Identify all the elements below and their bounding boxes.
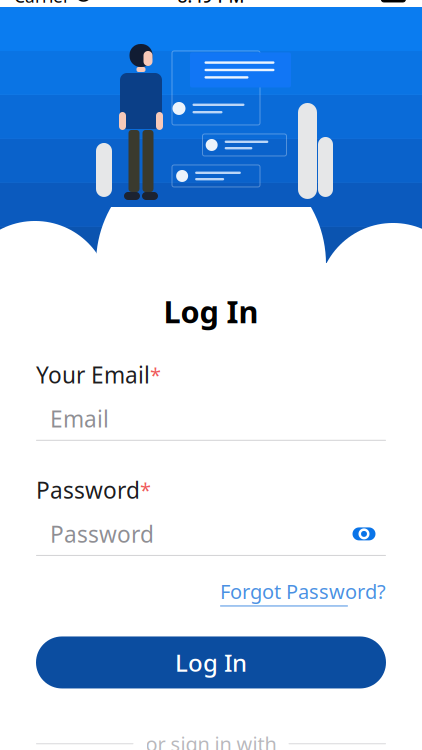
staticText: Email	[50, 404, 109, 434]
button[interactable]: Log In	[36, 636, 386, 688]
staticText: Password	[50, 519, 154, 549]
staticText: Carrier	[14, 0, 70, 7]
staticText: or sign in with	[145, 730, 276, 750]
button[interactable]: Show password	[342, 519, 386, 549]
staticText: *	[140, 477, 151, 503]
staticText: *	[150, 361, 161, 388]
staticText: Your Email	[36, 360, 150, 390]
staticText: 8:49 PM	[177, 0, 244, 7]
staticText: Log In	[163, 291, 258, 332]
button[interactable]: Forgot Password?	[220, 578, 386, 606]
staticText: Forgot Password?	[220, 578, 386, 604]
staticText: Password	[36, 475, 140, 505]
staticText: Log In	[175, 646, 247, 678]
